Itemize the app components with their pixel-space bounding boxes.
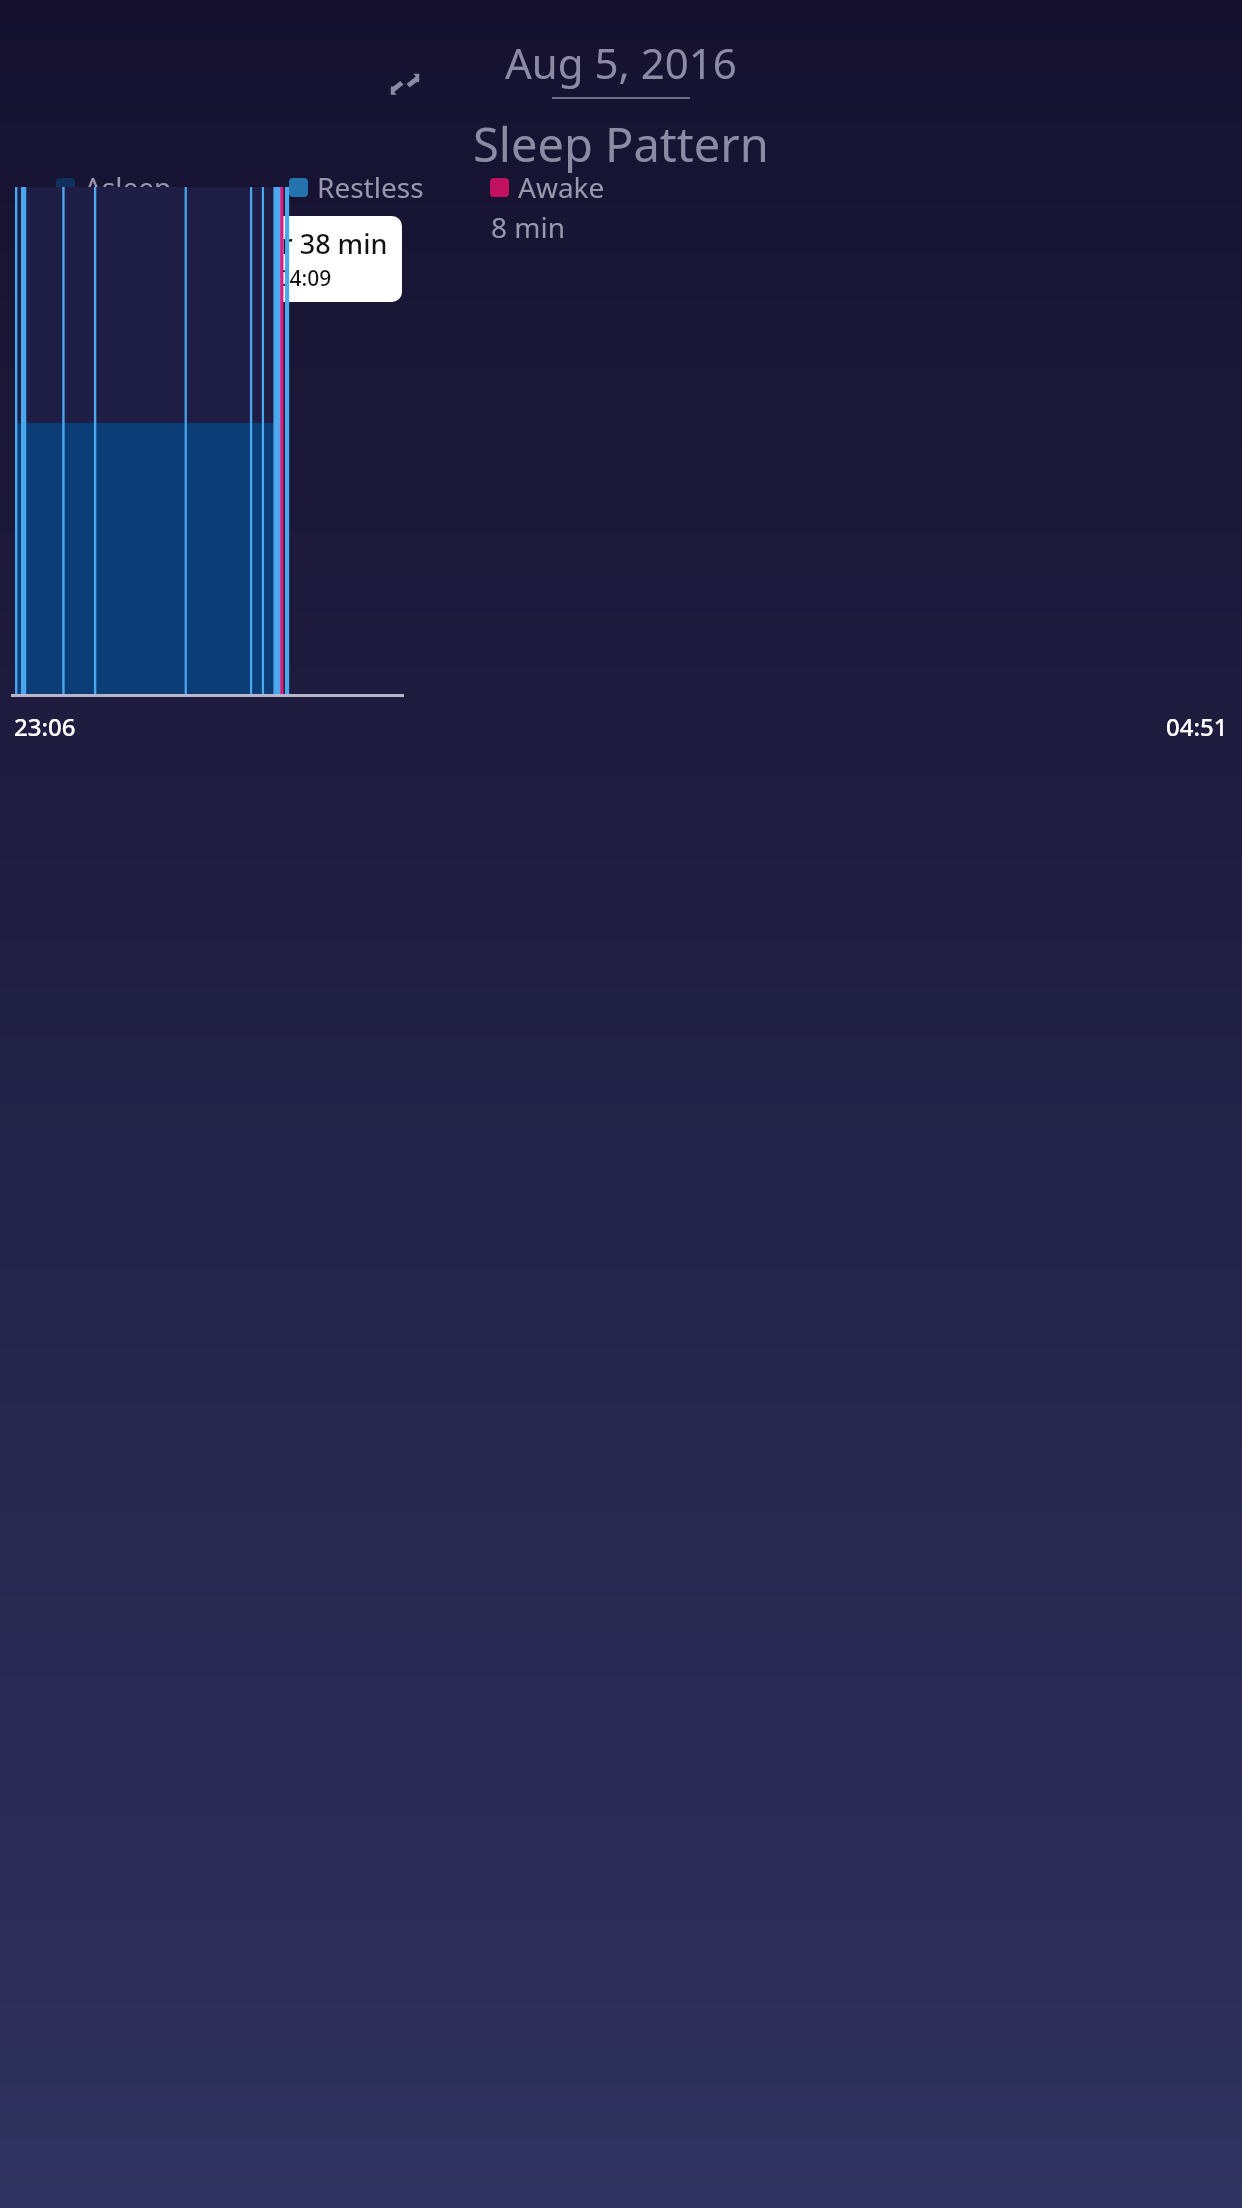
staticText: 23:06: [14, 710, 76, 743]
staticText: Asleep 2 hr 38 min: [149, 225, 388, 262]
button[interactable]: Asleep: [56, 168, 289, 246]
button[interactable]: Aug 5, 2016: [499, 34, 743, 99]
staticText: Awake: [518, 168, 605, 206]
staticText: Sleep Pattern: [473, 112, 769, 176]
staticText: Aug 5, 2016: [505, 34, 737, 91]
staticText: 04:51: [1166, 710, 1228, 743]
button[interactable]: [15, 187, 279, 694]
staticText: Asleep: [84, 168, 172, 206]
button[interactable]: Restless: [289, 168, 490, 246]
staticText: Restless: [317, 168, 424, 206]
button[interactable]: Collapse: [383, 62, 427, 106]
staticText: 8 min: [491, 208, 566, 246]
button[interactable]: Asleep 2 hr 38 min: [135, 216, 402, 302]
staticText: 01:31 - 04:09: [206, 264, 332, 293]
staticText: 15 min: [290, 208, 381, 246]
staticText: 5 hr 29 min: [57, 208, 207, 246]
button[interactable]: Awake: [490, 168, 605, 246]
